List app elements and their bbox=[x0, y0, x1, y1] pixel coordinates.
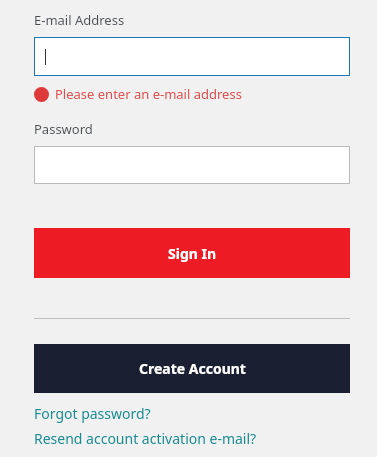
button[interactable]: Sign In bbox=[34, 228, 350, 278]
staticText: Please enter an e-mail address bbox=[55, 85, 242, 103]
staticText: Password bbox=[34, 120, 93, 138]
staticText: E-mail Address bbox=[34, 11, 125, 29]
staticText: Create Account bbox=[139, 359, 246, 378]
button[interactable]: Forgot password? bbox=[34, 404, 151, 423]
button[interactable] bbox=[34, 37, 350, 76]
staticText: Sign In bbox=[168, 244, 217, 263]
button[interactable]: Create Account bbox=[34, 344, 350, 393]
button[interactable] bbox=[34, 146, 350, 184]
button[interactable]: Resend account activation e-mail? bbox=[34, 429, 257, 448]
